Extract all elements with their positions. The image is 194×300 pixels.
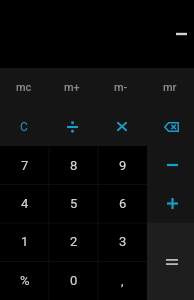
button[interactable]: 1 bbox=[0, 222, 49, 261]
staticText: % bbox=[20, 273, 30, 288]
button[interactable]: Minus bbox=[147, 146, 194, 184]
button[interactable]: 5 bbox=[49, 184, 98, 222]
button[interactable]: C bbox=[0, 107, 48, 146]
button[interactable]: 6 bbox=[98, 184, 147, 222]
button[interactable]: Plus bbox=[147, 184, 194, 223]
staticText: 1 bbox=[21, 234, 29, 249]
staticText: mr bbox=[163, 81, 177, 94]
staticText: 4 bbox=[21, 196, 29, 211]
staticText: m- bbox=[114, 81, 128, 94]
staticText: 9 bbox=[119, 158, 127, 173]
button[interactable]: 0 bbox=[49, 261, 98, 300]
button[interactable]: 8 bbox=[49, 146, 98, 184]
button[interactable]: 7 bbox=[0, 146, 49, 184]
button[interactable]: % bbox=[0, 261, 49, 300]
staticText: 3 bbox=[119, 234, 127, 249]
staticText: m+ bbox=[64, 81, 80, 94]
staticText: C bbox=[20, 120, 28, 134]
button[interactable]: , bbox=[98, 261, 147, 300]
staticText: 5 bbox=[70, 196, 78, 211]
staticText: mc bbox=[16, 81, 32, 94]
button[interactable]: m- bbox=[96, 68, 145, 107]
staticText: 0 bbox=[70, 273, 78, 288]
staticText: 7 bbox=[21, 158, 29, 173]
staticText: 8 bbox=[70, 158, 78, 173]
button[interactable]: Backspace bbox=[145, 107, 194, 146]
button[interactable]: mc bbox=[0, 68, 48, 107]
button[interactable]: 4 bbox=[0, 184, 49, 222]
staticText: 2 bbox=[70, 234, 78, 249]
button[interactable]: m+ bbox=[48, 68, 96, 107]
button[interactable]: Divide bbox=[48, 107, 96, 146]
button[interactable]: Multiply bbox=[96, 107, 145, 146]
button[interactable]: mr bbox=[145, 68, 194, 107]
button[interactable]: 2 bbox=[49, 222, 98, 261]
staticText: 6 bbox=[119, 196, 127, 211]
button[interactable]: 3 bbox=[98, 222, 147, 261]
button[interactable]: Equals bbox=[147, 223, 194, 300]
staticText: , bbox=[121, 273, 124, 288]
button[interactable]: 9 bbox=[98, 146, 147, 184]
